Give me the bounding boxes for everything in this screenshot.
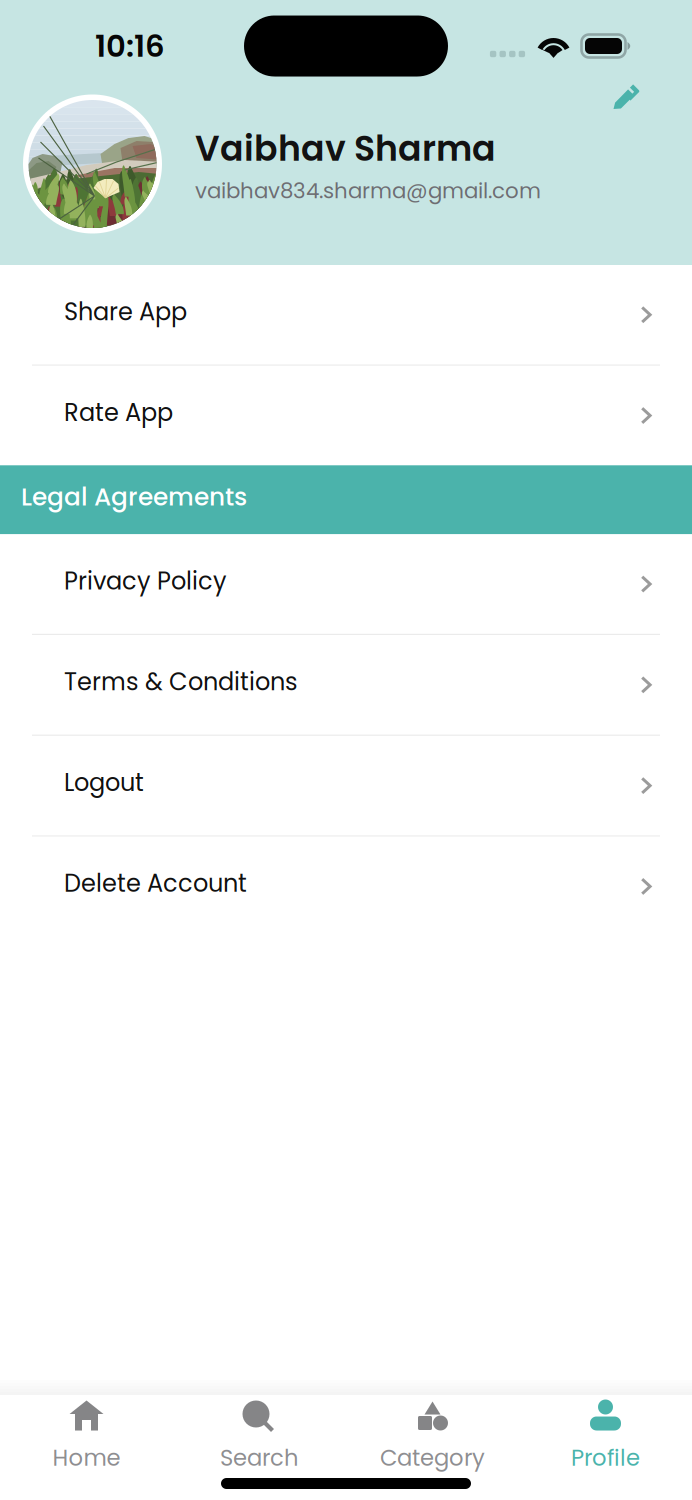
staticText: Terms & Conditions [64,665,298,699]
staticText: Rate App [64,396,173,429]
button[interactable]: Home [0,1400,173,1486]
button[interactable]: Search [173,1400,346,1486]
button[interactable]: Edit profile [604,75,649,119]
button[interactable]: Terms & Conditions [0,635,692,735]
staticText: Profile [571,1442,640,1474]
staticText: Share App [64,295,187,328]
staticText: Logout [64,766,144,799]
staticText: Legal Agreements [21,479,247,514]
staticText: Delete Account [64,867,247,900]
staticText: Category [380,1442,485,1474]
staticText: Search [220,1442,299,1474]
button[interactable]: Profile [519,1400,692,1486]
staticText: Privacy Policy [64,564,227,598]
button[interactable]: Delete Account [0,837,692,936]
button[interactable]: Category [346,1400,519,1486]
button[interactable]: Share App [0,265,692,364]
staticText: vaibhav834.sharma@gmail.com [195,176,541,206]
staticText: Home [52,1442,120,1474]
button[interactable]: Logout [0,736,692,835]
staticText: Vaibhav Sharma [195,124,496,173]
staticText: 10:16 [95,24,165,67]
button[interactable]: Privacy Policy [0,534,692,634]
button[interactable]: Rate App [0,366,692,465]
